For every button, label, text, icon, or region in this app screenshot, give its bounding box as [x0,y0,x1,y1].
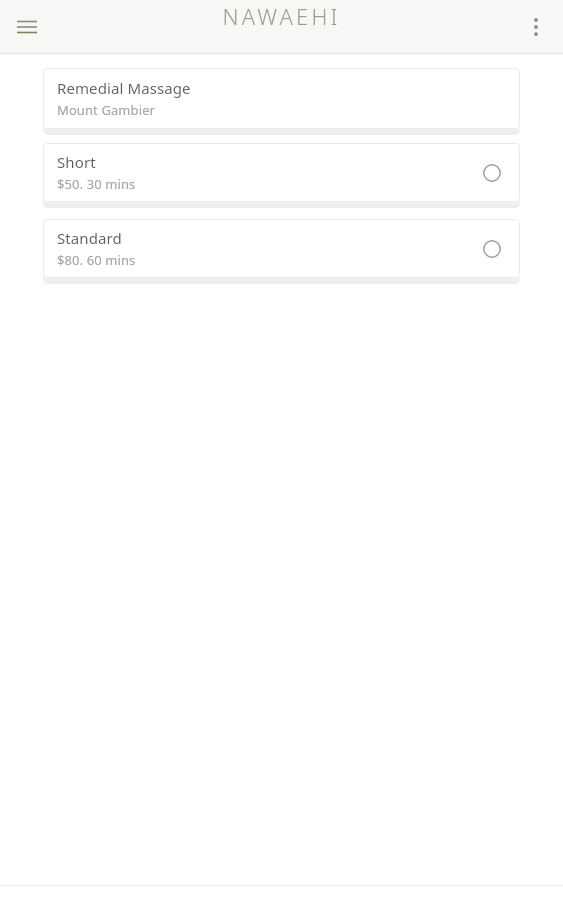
staticText: Mount Gambier [57,101,156,119]
button[interactable]: Open navigation menu [6,6,48,48]
button[interactable]: Standard [43,219,520,278]
staticText: NAWAEHI [222,1,341,31]
staticText: Short [57,152,96,172]
staticText: $80. 60 mins [57,251,136,269]
staticText: Remedial Massage [57,78,191,98]
button[interactable]: Short [43,143,520,202]
staticText: $50. 30 mins [57,175,136,193]
button[interactable]: Remedial Massage [43,68,520,129]
staticText: Standard [57,228,122,248]
button[interactable]: More options [515,6,557,48]
